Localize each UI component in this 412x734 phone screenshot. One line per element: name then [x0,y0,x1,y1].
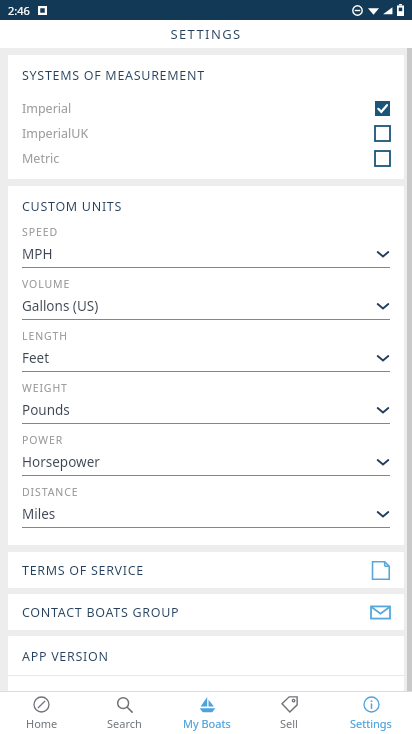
button[interactable]: Metric [8,146,404,171]
staticText: Search [107,716,142,731]
staticText: My Boats [183,716,231,731]
staticText: Horsepower [22,453,100,471]
button[interactable]: VOLUME [8,277,404,329]
staticText: CUSTOM UNITS [22,198,123,215]
staticText: Metric [22,150,60,167]
staticText: Miles [22,505,56,523]
staticText: Sell [280,716,298,731]
other: Contact Boats Group email [371,603,390,622]
staticText: DISTANCE [22,485,79,499]
staticText: LENGTH [22,329,68,343]
staticText: Home [26,716,58,731]
button[interactable]: Settings [330,692,412,734]
button[interactable]: SPEED [8,225,404,277]
staticText: Feet [22,349,50,367]
staticText: ImperialUK [22,125,89,142]
staticText: SPEED [22,225,58,239]
staticText: Imperial [22,100,72,117]
button[interactable]: Sell [248,692,330,734]
staticText: Pounds [22,401,70,419]
button[interactable]: Imperial [8,96,404,121]
button[interactable]: DISTANCE [8,485,404,537]
staticText: TERMS OF SERVICE [22,562,145,579]
staticText: CONTACT BOATS GROUP [22,604,180,621]
staticText: 2:46 [8,3,30,18]
other: Terms of service document [371,561,390,580]
button[interactable]: TERMS OF SERVICE [8,552,404,588]
button[interactable]: Home [0,692,83,734]
button[interactable]: WEIGHT [8,381,404,433]
button[interactable]: Search [83,692,166,734]
staticText: VOLUME [22,277,71,291]
staticText: POWER [22,433,64,447]
staticText: Gallons (US) [22,297,99,315]
staticText: Settings [350,716,392,731]
staticText: WEIGHT [22,381,68,395]
button[interactable]: ImperialUK [8,121,404,146]
button[interactable]: CONTACT BOATS GROUP [8,594,404,630]
staticText: MPH [22,245,53,263]
staticText: SYSTEMS OF MEASUREMENT [22,67,205,84]
button[interactable]: POWER [8,433,404,485]
staticText: APP VERSION [22,648,109,665]
button[interactable]: LENGTH [8,329,404,381]
staticText: SETTINGS [170,25,242,43]
button[interactable]: My Boats [166,692,248,734]
